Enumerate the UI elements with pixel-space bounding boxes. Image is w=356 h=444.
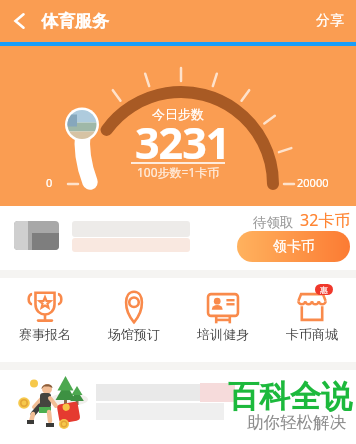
staticText: 场馆预订 [108, 326, 160, 342]
button[interactable]: 分享 [316, 12, 344, 30]
button[interactable]: 培训健身 [178, 290, 267, 362]
staticText: 今日步数 [152, 106, 204, 122]
staticText: 0 [46, 175, 53, 190]
staticText: 卡币商城 [286, 326, 338, 342]
button[interactable]: 百科全说 [0, 370, 356, 444]
button[interactable]: 场馆预订 [89, 290, 178, 362]
staticText: 培训健身 [197, 326, 249, 342]
staticText: 赛事报名 [19, 326, 71, 342]
staticText: 领卡币 [273, 238, 315, 256]
staticText: 助你轻松解决 [247, 412, 346, 433]
button[interactable]: 赛事报名 [0, 290, 89, 362]
button[interactable] [12, 13, 28, 29]
staticText: 体育服务 [41, 11, 109, 32]
button[interactable]: 领卡币 [237, 231, 350, 262]
staticText: 3231 [135, 113, 230, 172]
staticText: 20000 [297, 175, 329, 190]
staticText: 分享 [316, 12, 344, 30]
staticText: 100步数=1卡币 [137, 164, 220, 180]
staticText: 百科全说 [228, 377, 352, 416]
staticText: 惠 [320, 285, 328, 295]
staticText: 32卡币 [300, 209, 351, 231]
button[interactable]: 惠 [267, 290, 356, 362]
staticText: 待领取 [253, 214, 294, 231]
